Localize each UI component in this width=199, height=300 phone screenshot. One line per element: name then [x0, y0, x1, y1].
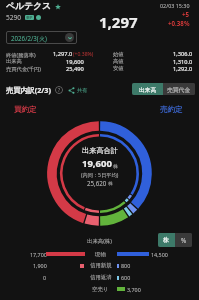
staticText: 現物 — [95, 251, 106, 258]
staticText: 14,500 — [151, 251, 168, 258]
staticText: 25,490 — [66, 65, 84, 73]
button[interactable]: 共有 — [68, 87, 88, 94]
staticText: ペルテクス — [6, 1, 52, 12]
staticText: 買約定 — [14, 105, 37, 114]
staticText: 株 — [163, 236, 170, 244]
staticText: 19,600 — [66, 58, 84, 66]
staticText: 19,600 — [82, 157, 112, 170]
staticText: +0.38% — [168, 19, 190, 27]
staticText: % — [181, 236, 187, 244]
button[interactable]: 2026/2/3(火) — [6, 31, 77, 44]
button[interactable]: % — [175, 233, 192, 247]
staticText: 1,292.0 — [173, 65, 193, 73]
staticText: (+0.38%) — [73, 51, 94, 58]
button[interactable]: Help — [55, 86, 63, 94]
staticText: ? — [58, 87, 61, 94]
staticText: 株 — [113, 163, 118, 169]
button[interactable]: 出来高 — [132, 83, 163, 95]
staticText: 信用返済 — [90, 274, 112, 281]
staticText: 1,310.0 — [173, 58, 193, 66]
staticText: (内同：5日平均) — [81, 171, 119, 178]
staticText: 3,700 — [127, 286, 141, 293]
staticText: 5290 — [6, 13, 22, 22]
staticText: 安値 — [113, 65, 124, 72]
staticText: +5 — [182, 10, 190, 18]
staticText: 終値(騰落率) — [6, 51, 36, 58]
staticText: 出来高 — [139, 86, 157, 93]
staticText: 1,297.0 — [53, 50, 73, 58]
staticText: 東P — [26, 15, 33, 20]
staticText: 02/03 15:30 — [160, 2, 190, 9]
staticText: 株 — [108, 181, 113, 187]
staticText: 0 — [43, 274, 47, 281]
staticText: 1,900 — [33, 262, 47, 269]
staticText: 始値 — [113, 51, 124, 58]
staticText: 信用新規 — [90, 262, 112, 269]
button[interactable]: 売買代金 — [163, 83, 195, 95]
staticText: 2026/2/3(火) — [11, 34, 47, 42]
staticText: 1,306.0 — [173, 50, 193, 58]
staticText: 高値 — [113, 58, 124, 65]
staticText: 17,700 — [30, 251, 47, 258]
staticText: 1,297 — [99, 12, 138, 32]
staticText: 出来高合計 — [82, 146, 118, 155]
staticText: 売買内訳(2/3) — [6, 85, 51, 95]
staticText: 出来高 — [6, 58, 22, 65]
staticText: 売買代金 — [167, 86, 191, 93]
staticText: 25,620 — [87, 179, 107, 187]
staticText: 800 — [121, 262, 131, 269]
staticText: 空売り — [92, 286, 109, 293]
staticText: 売約定 — [160, 105, 183, 114]
staticText: 出来高(株) — [87, 237, 112, 244]
button[interactable]: 株 — [158, 233, 175, 247]
staticText: 共有 — [77, 87, 88, 94]
staticText: 600 — [121, 274, 131, 281]
staticText: 売買代金(千円) — [6, 65, 41, 72]
